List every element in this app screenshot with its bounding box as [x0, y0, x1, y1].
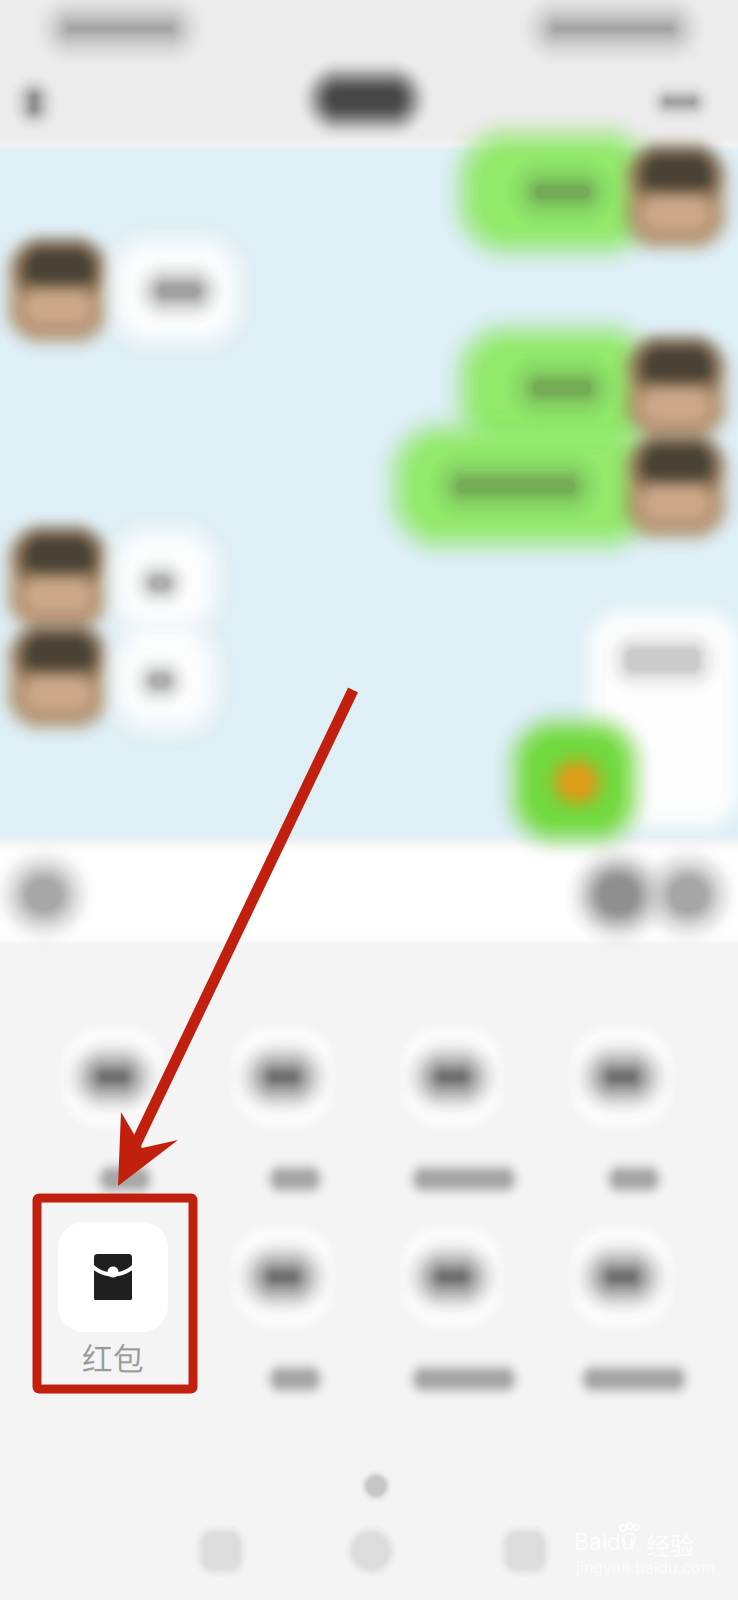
button[interactable] — [0, 0, 738, 1600]
button[interactable]: Home — [0, 0, 400, 1580]
button[interactable]: Back — [0, 0, 250, 1580]
button[interactable]: Recent apps — [0, 0, 554, 1580]
button[interactable] — [0, 0, 738, 1600]
staticText: 经验 — [646, 1527, 694, 1562]
button[interactable]: More options — [0, 0, 738, 1600]
staticText: Baidu — [574, 1528, 634, 1555]
button[interactable]: Emoji — [0, 0, 738, 1600]
button[interactable] — [0, 0, 738, 1600]
button[interactable]: More tools — [0, 0, 738, 1600]
button[interactable] — [0, 0, 738, 1600]
button[interactable]: Back — [0, 0, 738, 1600]
staticText: 红包 — [82, 1335, 144, 1379]
button[interactable] — [0, 0, 738, 1600]
button[interactable] — [0, 0, 738, 1600]
button[interactable] — [0, 0, 738, 1600]
button[interactable]: 红包 — [0, 0, 738, 1600]
button[interactable]: Voice message — [0, 0, 738, 1600]
